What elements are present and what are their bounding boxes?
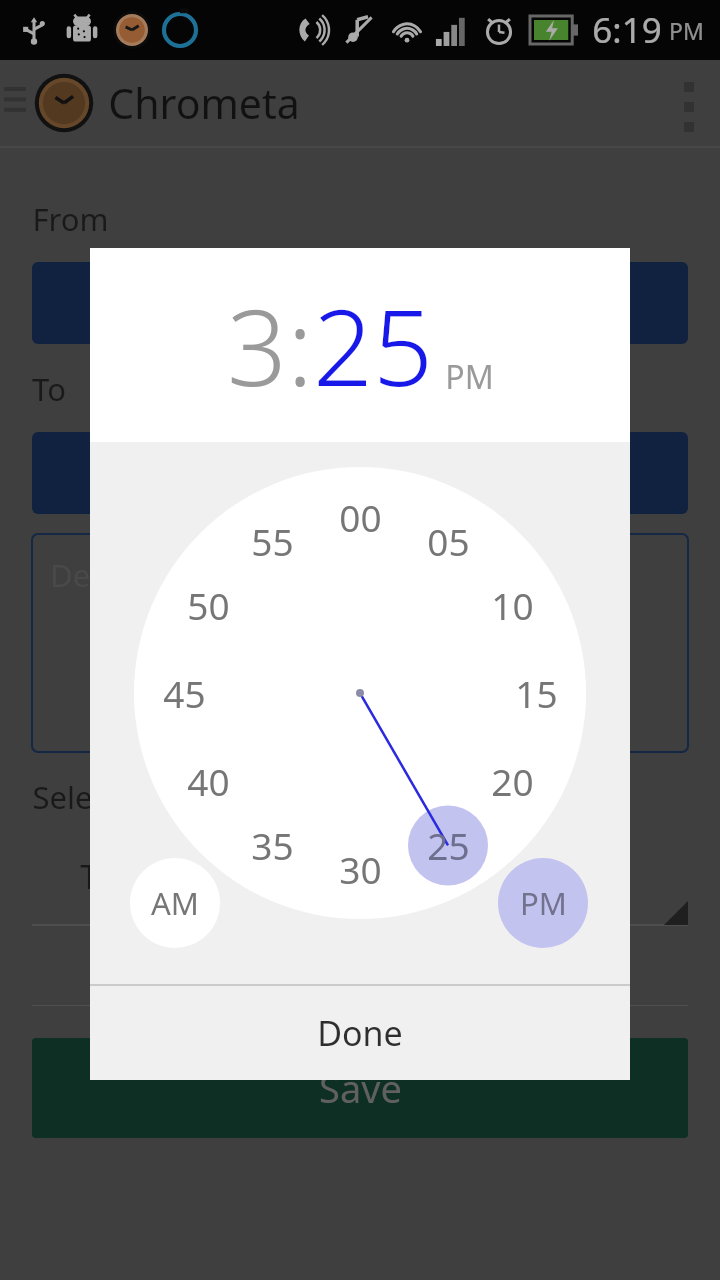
button[interactable]: Open navigation drawer: [0, 60, 26, 146]
button[interactable]: 35: [236, 815, 308, 875]
staticText: 30: [339, 844, 382, 894]
button[interactable]: 3: [227, 274, 287, 417]
button[interactable]: Description: [32, 534, 688, 752]
button[interactable]: 25: [412, 815, 484, 875]
staticText: Select: [32, 776, 119, 818]
staticText: Save: [319, 1062, 402, 1114]
staticText: 05: [427, 516, 470, 566]
button[interactable]: 20: [476, 751, 548, 811]
button[interactable]: 30: [324, 839, 396, 899]
staticText: 00: [339, 492, 382, 542]
staticText: PM: [445, 355, 494, 399]
staticText: From: [32, 198, 109, 240]
button[interactable]: 10: [476, 575, 548, 635]
button[interactable]: PM: [498, 858, 588, 948]
button[interactable]: PM: [367, 262, 688, 344]
button[interactable]: [32, 432, 353, 514]
staticText: Done: [317, 1010, 403, 1056]
staticText: 50: [187, 580, 230, 630]
button[interactable]: Done: [90, 986, 630, 1080]
button[interactable]: 05: [412, 511, 484, 571]
button[interactable]: 00: [324, 487, 396, 547]
button[interactable]: 45: [148, 663, 220, 723]
button[interactable]: 40: [172, 751, 244, 811]
staticText: 55: [251, 516, 294, 566]
staticText: 35: [251, 820, 294, 870]
button[interactable]: [32, 262, 353, 344]
button[interactable]: AM: [130, 858, 220, 948]
button[interactable]: PM: [445, 355, 494, 399]
staticText: Chrometa: [108, 75, 300, 131]
staticText: 25: [313, 274, 433, 417]
staticText: 20: [491, 756, 534, 806]
staticText: To: [32, 368, 66, 410]
staticText: 10: [491, 580, 534, 630]
staticText: PM: [669, 15, 704, 46]
staticText: :: [287, 274, 313, 417]
button[interactable]: 15: [500, 663, 572, 723]
staticText: AM: [151, 882, 199, 924]
button[interactable]: PM: [367, 432, 688, 514]
staticText: PM: [520, 882, 567, 924]
button[interactable]: 25: [313, 274, 433, 417]
button[interactable]: Task: [32, 854, 688, 951]
staticText: 3: [227, 274, 287, 417]
staticText: 15: [515, 668, 558, 718]
staticText: 25: [427, 820, 470, 870]
staticText: Description: [50, 554, 217, 596]
staticText: 45: [163, 668, 206, 718]
staticText: 40: [187, 756, 230, 806]
button[interactable]: Save: [32, 1038, 688, 1138]
button[interactable]: 50: [172, 575, 244, 635]
staticText: 6:19: [592, 6, 662, 54]
staticText: Task: [80, 854, 148, 899]
button[interactable]: 55: [236, 511, 308, 571]
